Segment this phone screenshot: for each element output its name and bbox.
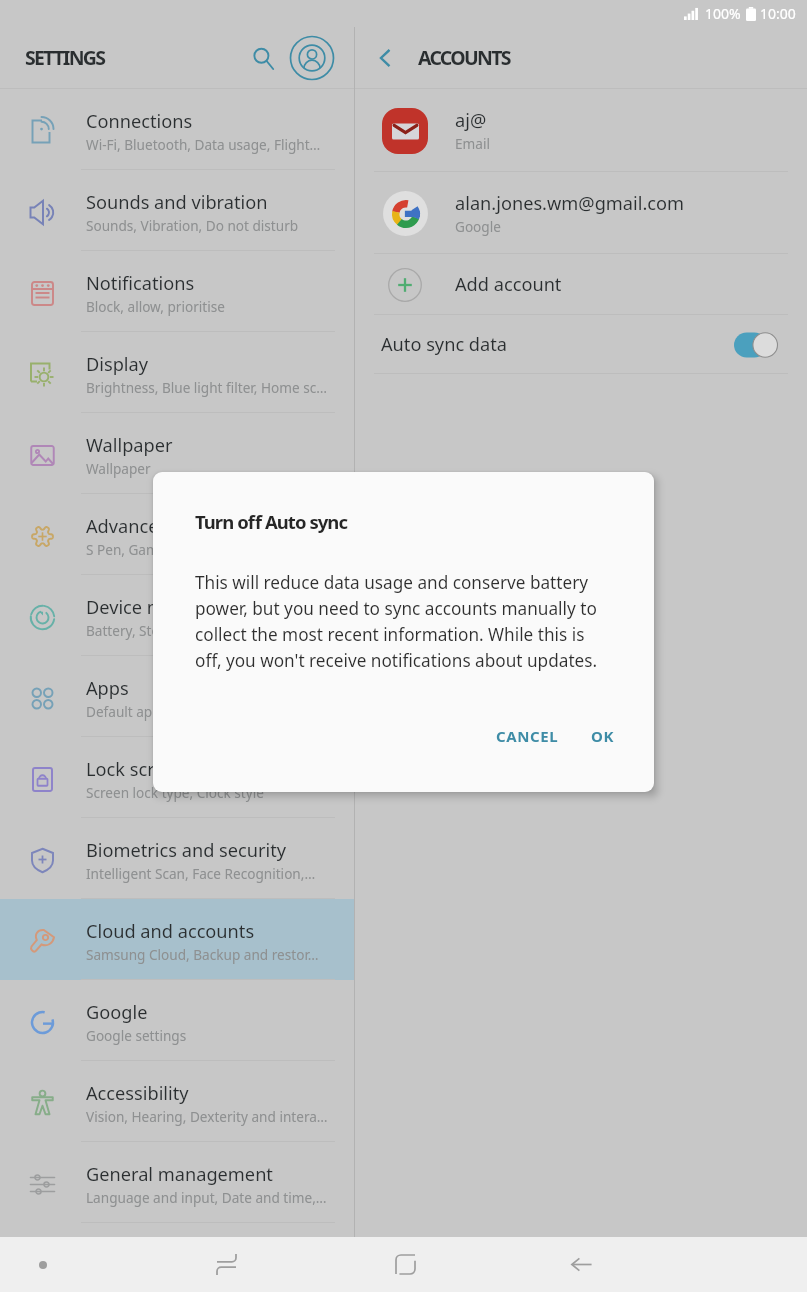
staticText: Samsung Cloud, Backup and restor… [86, 945, 319, 964]
staticText: General management [86, 1162, 273, 1187]
staticText: Turn off Auto sync [195, 509, 348, 534]
staticText: CANCEL [496, 726, 559, 746]
staticText: OK [591, 726, 615, 746]
staticText: Wallpaper [86, 433, 173, 458]
button[interactable]: alan.jones.wm@gmail.com [355, 172, 807, 254]
button[interactable]: Apps [0, 656, 354, 737]
staticText: 10:00 [760, 4, 796, 23]
button[interactable]: Home [379, 1237, 431, 1292]
staticText: Screen lock type, Clock style [86, 783, 264, 802]
staticText: Google [455, 217, 501, 236]
button[interactable]: Biometrics and security [0, 818, 354, 899]
staticText: Wi-Fi, Bluetooth, Data usage, Flight… [86, 135, 321, 154]
staticText: Apps [86, 676, 129, 701]
button[interactable]: CANCEL [482, 717, 573, 755]
button[interactable]: Accessibility [0, 1061, 354, 1142]
staticText: 100% [705, 4, 741, 23]
staticText: Biometrics and security [86, 838, 287, 863]
button[interactable]: Notifications [0, 251, 354, 332]
staticText: Add account [455, 272, 562, 297]
staticText: Accessibility [86, 1081, 189, 1106]
staticText: Sounds and vibration [86, 190, 268, 215]
button[interactable]: Add account [355, 254, 807, 315]
staticText: Intelligent Scan, Face Recognition,… [86, 864, 316, 883]
staticText: Cloud and accounts [86, 919, 255, 944]
staticText: Notifications [86, 271, 195, 296]
staticText: This will reduce data usage and conserve… [195, 571, 607, 672]
button[interactable]: Account [290, 36, 334, 80]
button[interactable]: Search [242, 37, 284, 79]
staticText: Block, allow, prioritise [86, 297, 225, 316]
staticText: Vision, Hearing, Dexterity and intera… [86, 1107, 328, 1126]
button[interactable]: Connections [0, 89, 354, 170]
button[interactable]: Back [363, 36, 407, 80]
button[interactable]: General management [0, 1142, 354, 1223]
button[interactable]: Cloud and accounts [0, 899, 354, 980]
staticText: alan.jones.wm@gmail.com [455, 191, 685, 216]
staticText: Language and input, Date and time,… [86, 1188, 327, 1207]
button[interactable]: Auto sync data [355, 315, 807, 374]
button[interactable]: Recents [200, 1237, 252, 1292]
button[interactable]: Device maintenance [0, 575, 354, 656]
staticText: aj@ [455, 108, 487, 133]
staticText: Google [86, 1000, 148, 1025]
button[interactable]: OK [577, 717, 629, 755]
staticText: Device maintenance [86, 595, 259, 620]
staticText: Email [455, 134, 490, 153]
button[interactable]: Wallpaper [0, 413, 354, 494]
staticText: Wallpaper [86, 459, 151, 478]
staticText: ACCOUNTS [418, 44, 510, 71]
button[interactable]: Google [0, 980, 354, 1061]
button[interactable]: Menu [17, 1237, 69, 1292]
staticText: SETTINGS [25, 44, 105, 71]
staticText: Connections [86, 109, 193, 134]
button[interactable]: Back [555, 1237, 607, 1292]
button[interactable]: aj@ [355, 89, 807, 172]
button[interactable]: Sounds and vibration [0, 170, 354, 251]
staticText: Google settings [86, 1026, 187, 1045]
staticText: Brightness, Blue light filter, Home sc… [86, 378, 327, 397]
staticText: S Pen, Games, One-handed mode [86, 540, 301, 559]
staticText: Sounds, Vibration, Do not disturb [86, 216, 299, 235]
button[interactable]: Lock screen and security [0, 737, 354, 818]
button[interactable]: Advanced features [0, 494, 354, 575]
staticText: Default apps, App permissions [86, 702, 281, 721]
staticText: Advanced features [86, 514, 246, 539]
button[interactable]: Display [0, 332, 354, 413]
staticText: Lock screen and security [86, 757, 296, 782]
staticText: Battery, Storage, Memory [86, 621, 250, 640]
staticText: Display [86, 352, 149, 377]
staticText: Auto sync data [381, 332, 508, 357]
